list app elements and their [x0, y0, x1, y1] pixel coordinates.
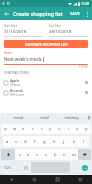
- button[interactable]: .: [72, 162, 78, 173]
- staticText: s: [15, 139, 18, 145]
- staticText: meal: [40, 115, 49, 120]
- staticText: i: [68, 126, 70, 132]
- button[interactable]: p: [82, 124, 91, 134]
- staticText: g: [43, 139, 46, 145]
- button[interactable]: y: [46, 124, 55, 134]
- button[interactable]: Delete Broccoli: [83, 89, 89, 95]
- staticText: y: [49, 126, 52, 132]
- staticText: r: [32, 126, 34, 132]
- button[interactable]: meeting: [58, 113, 85, 122]
- button[interactable]: s: [12, 136, 21, 147]
- button[interactable]: r: [28, 124, 37, 134]
- staticText: n: [63, 152, 66, 158]
- staticText: Create shopping list: [13, 10, 63, 17]
- button[interactable]: m: [69, 149, 78, 160]
- button[interactable]: f: [30, 136, 39, 147]
- staticText: meals: [13, 115, 24, 120]
- staticText: ,: [17, 165, 19, 170]
- button[interactable]: Emoji: [23, 162, 29, 173]
- button[interactable]: g: [39, 136, 49, 147]
- button[interactable]: i: [64, 124, 73, 134]
- button[interactable]: Delete Apple: [83, 79, 89, 85]
- staticText: l: [83, 139, 85, 145]
- button[interactable]: x: [24, 149, 33, 160]
- button[interactable]: v: [42, 149, 51, 160]
- button[interactable]: w: [10, 124, 19, 134]
- button[interactable]: c: [33, 149, 42, 160]
- staticText: Broccoli: [10, 88, 23, 93]
- staticText: w: [13, 126, 17, 132]
- staticText: u: [58, 126, 61, 132]
- staticText: Next week's meals: [4, 56, 42, 62]
- button[interactable]: Toggle Apple: [3, 80, 8, 85]
- button[interactable]: ,: [15, 162, 21, 173]
- button[interactable]: o: [73, 124, 82, 134]
- button[interactable]: Back: [0, 175, 23, 184]
- staticText: .: [74, 165, 76, 170]
- staticText: m: [72, 152, 76, 158]
- button[interactable]: End Date: [49, 24, 88, 37]
- button[interactable]: n: [60, 149, 69, 160]
- button[interactable]: Home: [23, 175, 46, 184]
- button[interactable]: z: [15, 149, 24, 160]
- button[interactable]: SAVE: [68, 9, 82, 19]
- button[interactable]: Voice input: [85, 113, 92, 122]
- button[interactable]: GENERATE SHOPPING LIST: [4, 40, 88, 48]
- staticText: a: [6, 139, 9, 145]
- staticText: meeting: [64, 115, 79, 120]
- button[interactable]: k: [69, 136, 79, 147]
- button[interactable]: Backspace: [78, 149, 91, 160]
- staticText: 28/10/2018: [49, 29, 72, 35]
- button[interactable]: e: [19, 124, 28, 134]
- button[interactable]: Enter: [80, 162, 90, 173]
- staticText: j: [63, 139, 65, 145]
- button[interactable]: More options: [82, 9, 92, 19]
- staticText: h: [53, 139, 56, 145]
- button[interactable]: Toggle Apple: [0, 77, 92, 87]
- staticText: v: [45, 152, 48, 158]
- staticText: 100 Grams: [10, 93, 25, 97]
- staticText: q: [4, 126, 7, 132]
- button[interactable]: meals: [5, 113, 31, 122]
- button[interactable]: t: [37, 124, 46, 134]
- button[interactable]: l: [79, 136, 89, 147]
- button[interactable]: Toggle Broccoli: [3, 90, 8, 95]
- button[interactable]: Back: [0, 7, 13, 20]
- staticText: 17/100: [79, 65, 88, 69]
- button[interactable]: Keyboard: [69, 175, 92, 184]
- staticText: z: [19, 152, 21, 158]
- staticText: Notes: [4, 51, 13, 55]
- button[interactable]: h: [49, 136, 59, 147]
- staticText: p: [85, 126, 88, 132]
- staticText: o: [76, 126, 79, 132]
- button[interactable]: Recents: [46, 175, 69, 184]
- staticText: d: [24, 139, 27, 145]
- button[interactable]: j: [59, 136, 69, 147]
- staticText: b: [54, 152, 57, 158]
- staticText: t: [41, 126, 43, 132]
- button[interactable]: Shift: [1, 149, 15, 160]
- button[interactable]: d: [21, 136, 30, 147]
- button[interactable]: u: [55, 124, 64, 134]
- button[interactable]: a: [3, 136, 12, 147]
- staticText: Start Date: [4, 24, 18, 28]
- staticText: ?123: [4, 166, 11, 170]
- staticText: PENDING ITEMS: [4, 71, 29, 75]
- button[interactable]: b: [51, 149, 60, 160]
- button[interactable]: ?123: [2, 162, 13, 173]
- staticText: ›: [2, 115, 4, 120]
- button[interactable]: meal: [31, 113, 58, 122]
- staticText: GENERATE SHOPPING LIST: [25, 42, 68, 47]
- staticText: 5 Pieces: [10, 83, 21, 87]
- staticText: 31/10/2018: [4, 29, 27, 35]
- staticText: c: [36, 152, 39, 158]
- staticText: 13:28: [81, 2, 90, 6]
- button[interactable]: Start Date: [4, 24, 43, 37]
- staticText: Apple: [10, 78, 20, 83]
- button[interactable]: Toggle Broccoli: [0, 87, 92, 97]
- staticText: e: [22, 126, 25, 132]
- button[interactable]: q: [1, 124, 10, 134]
- staticText: x: [27, 152, 30, 158]
- staticText: f: [34, 139, 36, 145]
